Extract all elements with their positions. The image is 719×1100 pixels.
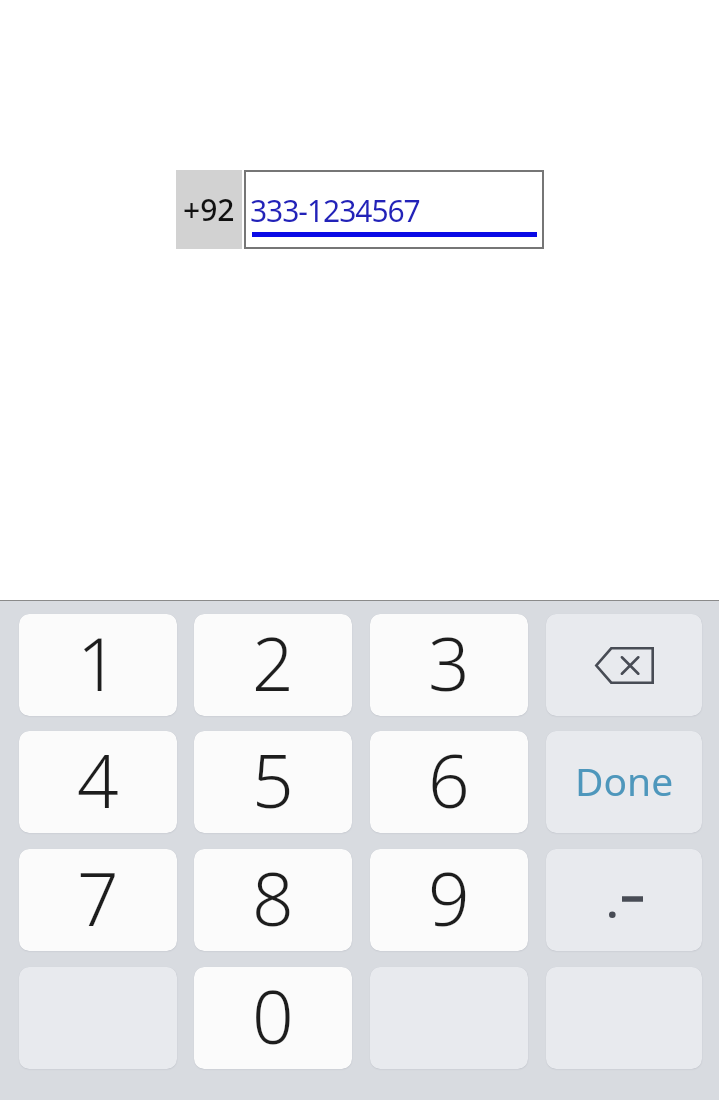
button[interactable]: 9	[370, 849, 528, 951]
button[interactable]: 8	[194, 849, 352, 951]
button[interactable]: 2	[194, 614, 352, 716]
staticText: 5	[252, 731, 294, 829]
button[interactable]: 3	[370, 614, 528, 716]
button[interactable]: 4	[19, 731, 177, 833]
staticText: 7	[77, 849, 119, 947]
staticText: 6	[428, 731, 470, 829]
button[interactable]: Period and dash	[546, 849, 702, 951]
button[interactable]: Backspace	[546, 614, 702, 716]
button[interactable]: Done	[546, 731, 702, 833]
button[interactable]: 1	[19, 614, 177, 716]
button[interactable]: 7	[19, 849, 177, 951]
staticText: 333-1234567	[250, 190, 420, 231]
button[interactable]: 6	[370, 731, 528, 833]
staticText: 1	[77, 614, 119, 712]
button[interactable]: 333-1234567	[244, 170, 544, 249]
staticText: 8	[252, 849, 294, 947]
staticText: 4	[77, 731, 119, 829]
staticText: +92	[183, 189, 235, 230]
staticText: 9	[428, 849, 470, 947]
button[interactable]: +92	[176, 170, 242, 249]
staticText: Done	[575, 754, 674, 807]
button[interactable]: 5	[194, 731, 352, 833]
staticText: 3	[428, 614, 470, 712]
button[interactable]: 0	[194, 967, 352, 1069]
staticText: 2	[252, 614, 294, 712]
staticText: 0	[252, 967, 294, 1065]
